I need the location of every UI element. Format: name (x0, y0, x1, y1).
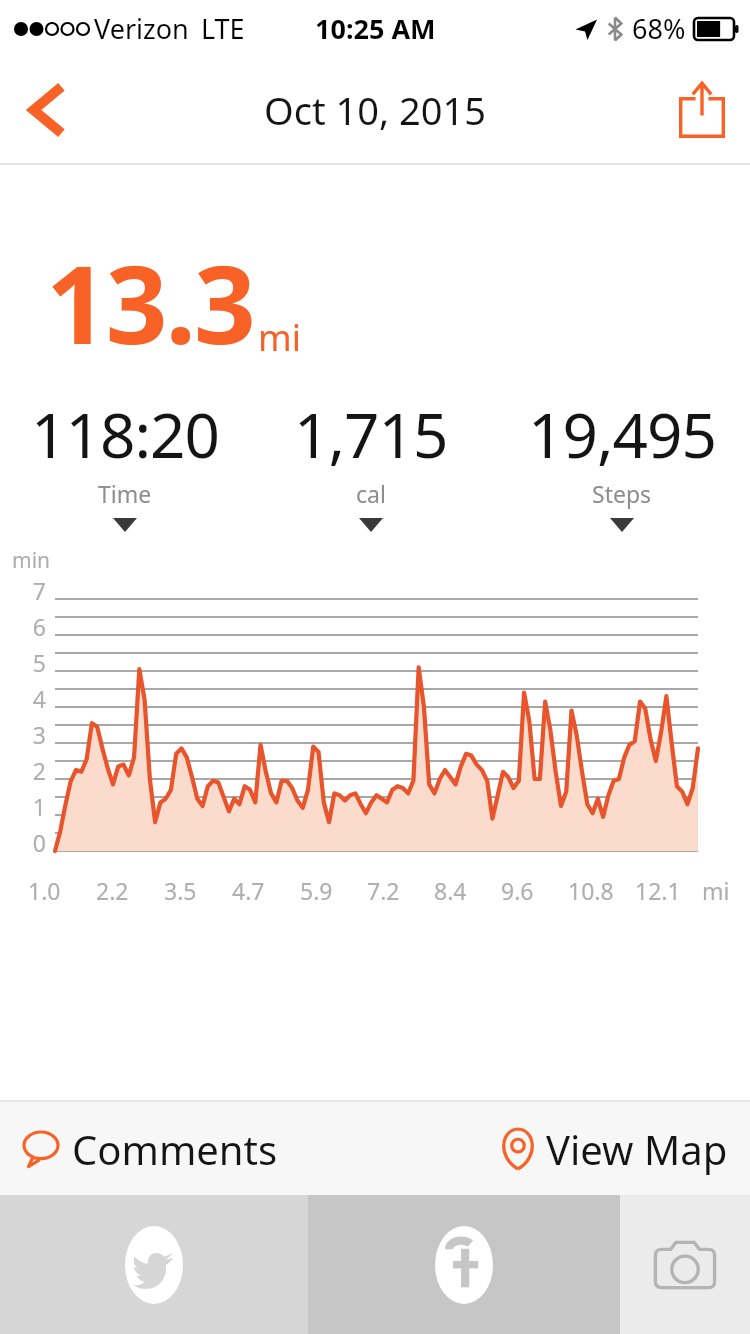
staticText: 6 (32, 611, 46, 642)
staticText: 1.0 (28, 875, 61, 906)
staticText: Comments (72, 1122, 278, 1176)
button[interactable]: Share on Facebook (308, 1195, 620, 1334)
staticText: 13.3 (46, 229, 254, 376)
button[interactable]: Comments (0, 1102, 375, 1195)
button[interactable]: 1,715 (249, 392, 493, 532)
staticText: LTE (201, 10, 245, 47)
staticText: min (12, 546, 51, 575)
staticText: Verizon (94, 10, 189, 47)
button[interactable]: View Map (375, 1102, 750, 1195)
staticText: 4.7 (232, 875, 265, 906)
staticText: 2 (32, 755, 46, 786)
staticText: 1 (32, 791, 46, 822)
button[interactable]: 118:20 (0, 392, 249, 532)
staticText: 1,715 (294, 392, 448, 476)
staticText: Oct 10, 2015 (264, 84, 486, 136)
staticText: 8.4 (434, 875, 467, 906)
staticText: 2.2 (96, 875, 129, 906)
staticText: Time (98, 478, 152, 509)
staticText: mi (702, 875, 730, 906)
button[interactable]: 19,495 (493, 392, 750, 532)
staticText: 3.5 (164, 875, 197, 906)
staticText: View Map (546, 1122, 728, 1176)
staticText: 7.2 (367, 875, 400, 906)
staticText: 19,495 (528, 392, 716, 476)
button[interactable]: Add photo (620, 1195, 750, 1334)
button[interactable]: Share (654, 64, 750, 156)
staticText: 0 (32, 827, 46, 858)
button[interactable]: Share on Twitter (0, 1195, 308, 1334)
button[interactable]: Back (0, 65, 90, 155)
staticText: 3 (32, 719, 46, 750)
staticText: 10.8 (568, 875, 614, 906)
staticText: 10:25 AM (315, 10, 436, 47)
staticText: cal (356, 478, 386, 509)
staticText: 5 (32, 647, 46, 678)
staticText: 118:20 (31, 392, 219, 476)
staticText: 12.1 (635, 875, 681, 906)
staticText: mi (258, 313, 301, 362)
staticText: 68% (632, 10, 686, 47)
staticText: 9.6 (501, 875, 534, 906)
staticText: 4 (32, 683, 46, 714)
staticText: 7 (32, 575, 46, 606)
staticText: 5.9 (300, 875, 333, 906)
staticText: Steps (592, 478, 652, 509)
